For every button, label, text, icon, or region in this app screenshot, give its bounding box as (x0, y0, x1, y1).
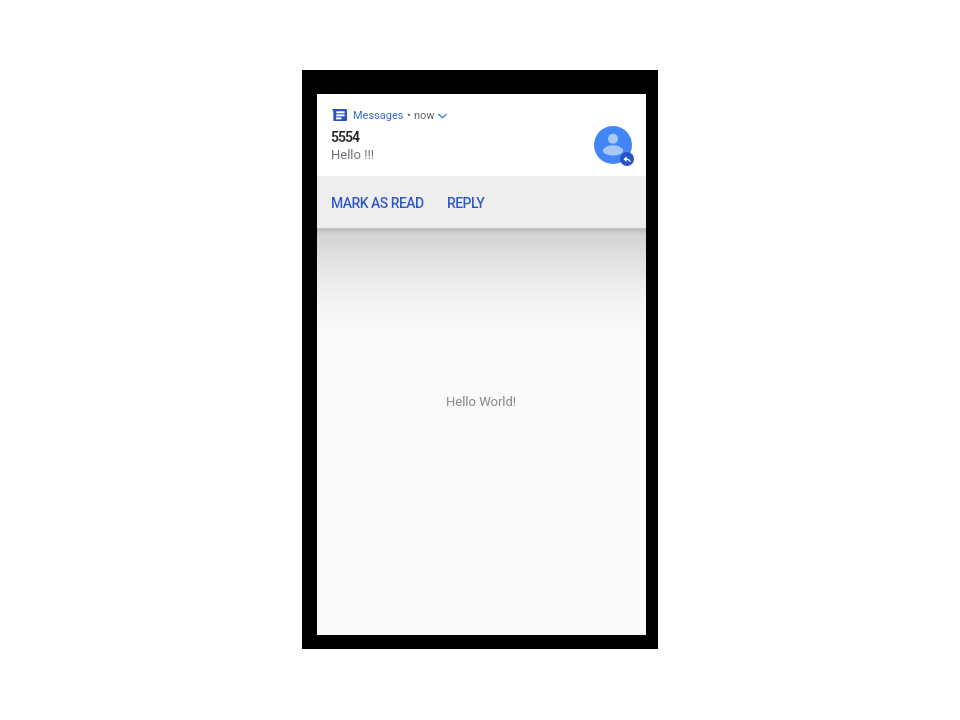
button[interactable]: Reply (620, 152, 634, 166)
staticText: Messages (353, 109, 404, 122)
staticText: Hello World! (446, 394, 517, 409)
other: Messages (332, 109, 347, 121)
staticText: REPLY (447, 195, 485, 211)
button[interactable]: Expand notification (438, 109, 447, 121)
staticText: 5554 (331, 129, 360, 145)
staticText: MARK AS READ (331, 195, 424, 211)
staticText: now (414, 109, 435, 122)
staticText: • (407, 109, 411, 122)
button[interactable]: Sender avatar (594, 126, 634, 166)
button[interactable]: MARK AS READ (323, 185, 432, 221)
button[interactable]: REPLY (439, 185, 493, 221)
staticText: Hello !!! (331, 147, 375, 162)
button[interactable]: Messages (317, 94, 646, 176)
